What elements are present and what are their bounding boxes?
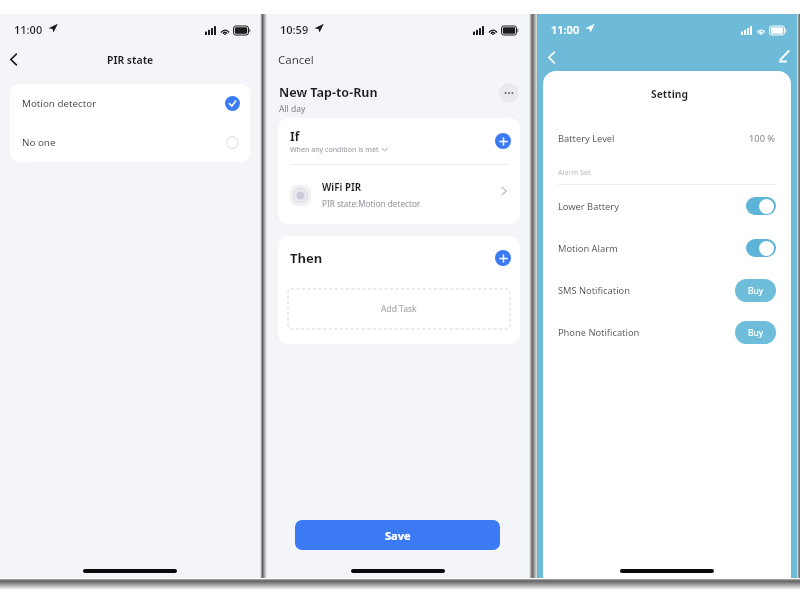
button[interactable]: Phone Notification: [543, 311, 791, 353]
staticText: 10:59: [280, 22, 309, 37]
button[interactable]: Cancel: [278, 52, 314, 68]
staticText: Buy: [748, 285, 764, 297]
staticText: Alarm Set: [558, 167, 591, 177]
staticText: If: [290, 128, 300, 144]
staticText: 11:00: [551, 22, 580, 37]
button[interactable]: Toggle: [746, 239, 776, 257]
button[interactable]: SMS Notification: [543, 269, 791, 311]
staticText: No one: [22, 136, 56, 149]
button[interactable]: More options: [499, 83, 519, 103]
staticText: Then: [290, 249, 323, 267]
staticText: Battery Level: [558, 132, 615, 145]
button[interactable]: Add Task: [288, 289, 510, 329]
button[interactable]: Buy: [735, 279, 776, 302]
button[interactable]: Motion Alarm: [543, 227, 791, 269]
button[interactable]: Back: [537, 44, 565, 71]
staticText: 11:00: [14, 22, 43, 37]
button[interactable]: Edit: [770, 43, 798, 70]
staticText: Motion detector: [22, 97, 97, 110]
staticText: New Tap-to-Run: [279, 84, 378, 101]
button[interactable]: Add: [495, 133, 511, 149]
staticText: Add Task: [381, 303, 417, 315]
button[interactable]: Back: [0, 45, 27, 73]
button[interactable]: Buy: [735, 321, 776, 344]
staticText: Setting: [651, 87, 689, 101]
staticText: SMS Notification: [558, 284, 630, 297]
staticText: WiFi PIR: [322, 181, 362, 194]
staticText: Motion Alarm: [558, 242, 618, 255]
button[interactable]: WiFi PIR: [278, 165, 520, 224]
staticText: PIR state: [107, 53, 154, 67]
button[interactable]: Motion detector: [10, 84, 250, 123]
staticText: PIR state:Motion detector: [322, 198, 421, 209]
staticText: Phone Notification: [558, 326, 640, 339]
staticText: Lower Battery: [558, 200, 619, 213]
staticText: All day: [279, 103, 306, 115]
staticText: When any condition is met: [290, 144, 379, 154]
staticText: Buy: [748, 327, 764, 339]
button[interactable]: Save: [295, 520, 500, 550]
button[interactable]: No one: [10, 123, 250, 162]
staticText: Save: [385, 528, 411, 543]
button[interactable]: Lower Battery: [543, 185, 791, 227]
staticText: 100 %: [749, 132, 776, 145]
button[interactable]: Toggle: [746, 197, 776, 215]
button[interactable]: Add: [495, 250, 511, 266]
staticText: Cancel: [278, 52, 314, 68]
